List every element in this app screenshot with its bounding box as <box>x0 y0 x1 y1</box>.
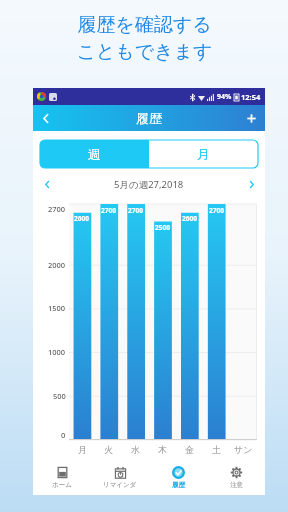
staticText: 履歴を確認する <box>77 13 212 37</box>
staticText: 金 <box>185 444 194 455</box>
staticText: 水 <box>131 444 140 455</box>
staticText: 1000 <box>48 347 66 357</box>
staticText: 2700 <box>128 206 143 215</box>
button[interactable]: Next week <box>243 176 259 192</box>
staticText: ホーム <box>52 481 72 489</box>
staticText: 履歴 <box>136 110 162 126</box>
button[interactable]: ホーム <box>33 459 91 495</box>
staticText: 2000 <box>48 260 66 270</box>
staticText: リマインダ <box>103 481 137 489</box>
staticText: 注意 <box>230 481 243 489</box>
staticText: 12:54 <box>241 92 261 102</box>
staticText: 履歴 <box>172 481 185 489</box>
button[interactable]: 履歴 <box>149 459 207 495</box>
staticText: 土 <box>212 444 221 455</box>
staticText: 5月の週27,2018 <box>114 178 184 191</box>
button[interactable]: 月 <box>149 140 258 168</box>
staticText: 2700 <box>48 204 66 214</box>
staticText: 2700 <box>209 206 224 215</box>
staticText: 週 <box>88 146 101 162</box>
staticText: 2600 <box>182 214 197 223</box>
staticText: 火 <box>104 444 113 455</box>
button[interactable]: リマインダ <box>91 459 149 495</box>
staticText: 2600 <box>74 214 89 223</box>
button[interactable]: Previous week <box>39 176 55 192</box>
staticText: 500 <box>53 391 66 401</box>
staticText: 94% <box>217 92 232 102</box>
button[interactable]: 週 <box>40 140 149 168</box>
staticText: 月 <box>197 146 210 162</box>
staticText: 0 <box>61 430 66 440</box>
staticText: 1500 <box>48 303 66 313</box>
staticText: 2700 <box>101 206 116 215</box>
button[interactable]: Back <box>35 107 57 129</box>
staticText: サン <box>234 444 253 455</box>
button[interactable]: 注意 <box>207 459 265 495</box>
staticText: 月 <box>78 444 87 455</box>
button[interactable]: Add <box>240 107 262 129</box>
staticText: 木 <box>158 444 167 455</box>
staticText: 2500 <box>155 223 170 232</box>
staticText: こともできます <box>76 40 213 64</box>
